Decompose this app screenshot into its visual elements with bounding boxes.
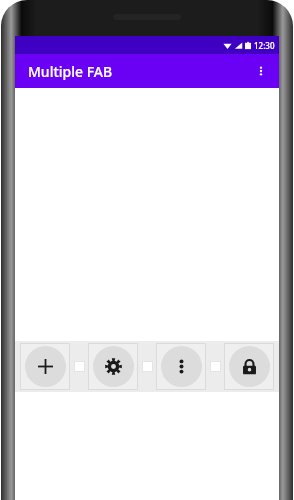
button[interactable]: Lock	[224, 343, 274, 390]
staticText: 12:30	[254, 40, 275, 51]
button[interactable]: More	[156, 343, 206, 390]
button[interactable]: Settings	[88, 343, 138, 390]
staticText: Multiple FAB	[28, 62, 113, 81]
button[interactable]: More options	[247, 57, 275, 85]
button[interactable]: Add	[20, 343, 70, 390]
